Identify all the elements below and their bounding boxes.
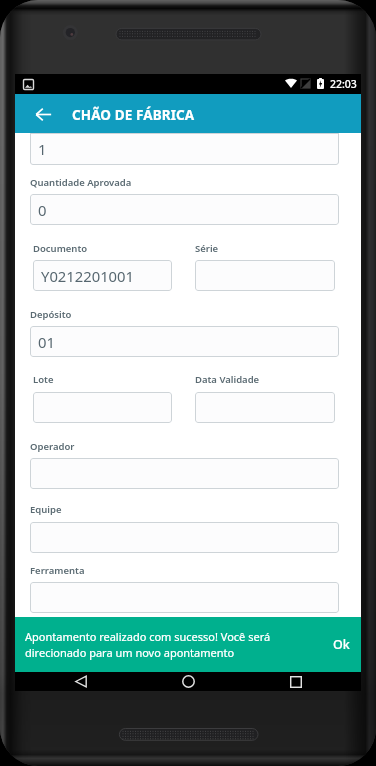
button[interactable]: Back [71, 672, 91, 691]
button[interactable] [30, 522, 339, 553]
staticText: 01 [38, 332, 55, 352]
button[interactable] [195, 260, 335, 291]
staticText: Lote [33, 373, 54, 386]
button[interactable]: 1 [30, 133, 339, 165]
button[interactable]: 01 [30, 326, 339, 357]
staticText: Série [195, 242, 219, 255]
button[interactable]: 0 [30, 194, 339, 225]
button[interactable] [30, 458, 339, 489]
button[interactable] [33, 392, 172, 423]
staticText: 0 [38, 200, 47, 220]
staticText: Data Validade [195, 373, 260, 386]
button[interactable]: Apontamento realizado com sucesso! Você … [15, 617, 361, 672]
button[interactable] [195, 392, 335, 423]
staticText: 22:03 [330, 77, 357, 91]
button[interactable]: Y0212201001 [33, 260, 172, 291]
staticText: Y0212201001 [41, 266, 135, 286]
staticText: Equipe [30, 503, 62, 516]
button[interactable] [30, 582, 339, 613]
staticText: CHÃO DE FÁBRICA [72, 106, 195, 124]
staticText: Apontamento realizado com sucesso! Você … [25, 629, 271, 660]
staticText: Operador [30, 440, 75, 453]
button[interactable]: Voltar [24, 95, 62, 133]
button[interactable]: Home [178, 672, 198, 691]
staticText: 1 [38, 139, 47, 159]
button[interactable]: Recents [286, 672, 306, 691]
button[interactable]: Ok [326, 631, 357, 658]
staticText: Ok [333, 636, 350, 653]
staticText: Depósito [30, 308, 72, 321]
staticText: Quantidade Aprovada [30, 176, 132, 189]
staticText: Ferramenta [30, 564, 85, 577]
staticText: Documento [33, 242, 88, 255]
